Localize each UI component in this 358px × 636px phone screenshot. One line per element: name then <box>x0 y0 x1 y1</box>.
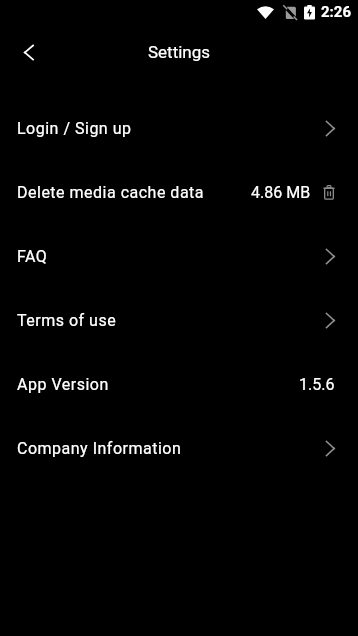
staticText: Settings <box>148 42 211 62</box>
button[interactable]: Company Information <box>0 416 358 480</box>
button[interactable]: Terms of use <box>0 288 358 352</box>
button[interactable]: FAQ <box>0 224 358 288</box>
staticText: 4.86 MB <box>251 183 311 202</box>
staticText: Login / Sign up <box>17 119 132 138</box>
staticText: FAQ <box>17 247 48 266</box>
button[interactable]: App Version <box>0 352 358 416</box>
staticText: App Version <box>17 375 109 394</box>
staticText: Delete media cache data <box>17 183 205 202</box>
button[interactable] <box>0 24 56 80</box>
button[interactable]: Login / Sign up <box>0 96 358 160</box>
staticText: 1.5.6 <box>299 375 335 394</box>
button[interactable]: Delete media cache data <box>0 160 358 224</box>
staticText: Company Information <box>17 439 182 458</box>
staticText: 2:26 <box>321 3 352 21</box>
staticText: Terms of use <box>17 311 117 330</box>
